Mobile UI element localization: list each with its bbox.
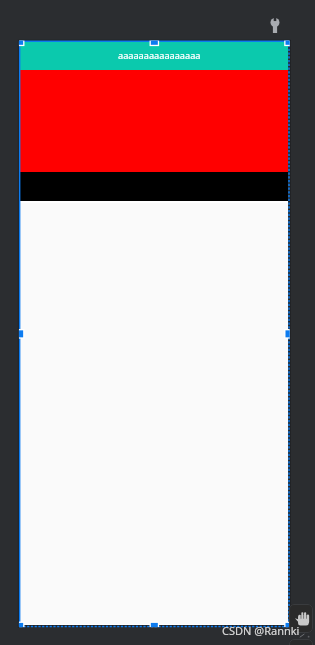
button[interactable]: Zoom controls bbox=[289, 639, 313, 645]
staticText: aaaaaaaaaaaaaaaa bbox=[118, 49, 201, 62]
button[interactable]: Pan tool bbox=[289, 604, 313, 633]
staticText: CSDN @Rannki bbox=[222, 623, 300, 638]
other: Design tools bbox=[270, 18, 280, 33]
button[interactable]: aaaaaaaaaaaaaaaa bbox=[20, 41, 288, 70]
